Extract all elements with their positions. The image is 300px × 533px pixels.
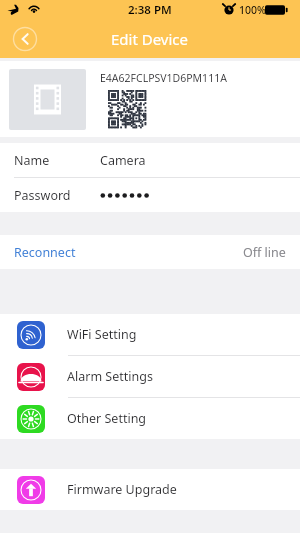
staticText: Reconnect: [14, 244, 76, 261]
button[interactable]: Back: [12, 26, 38, 52]
staticText: Other Setting: [67, 410, 147, 427]
other: Alarm Settings: [17, 363, 45, 391]
other: WiFi Setting: [17, 321, 45, 349]
button[interactable]: WiFi Setting: [0, 314, 300, 355]
button[interactable]: [9, 69, 86, 130]
other: Other Setting: [17, 405, 45, 433]
staticText: E4A62FCLPSV1D6PM111A: [100, 71, 227, 85]
staticText: Password: [14, 187, 71, 204]
button[interactable]: Name: [0, 143, 300, 177]
staticText: Name: [14, 152, 50, 169]
staticText: Firmware Upgrade: [67, 481, 177, 498]
staticText: Edit Device: [111, 29, 189, 49]
staticText: WiFi Setting: [67, 326, 137, 343]
staticText: 2:38 PM: [128, 2, 172, 18]
button[interactable]: Other Setting: [0, 398, 300, 439]
staticText: Off line: [243, 244, 286, 261]
staticText: Alarm Settings: [67, 368, 153, 385]
button[interactable]: Firmware Upgrade: [0, 469, 300, 510]
button[interactable]: Reconnect: [0, 235, 300, 269]
staticText: Camera: [100, 152, 146, 169]
button[interactable]: Password: [0, 178, 300, 212]
staticText: 100%: [239, 3, 266, 17]
other: Firmware Upgrade: [17, 476, 45, 504]
button[interactable]: Alarm Settings: [0, 356, 300, 397]
